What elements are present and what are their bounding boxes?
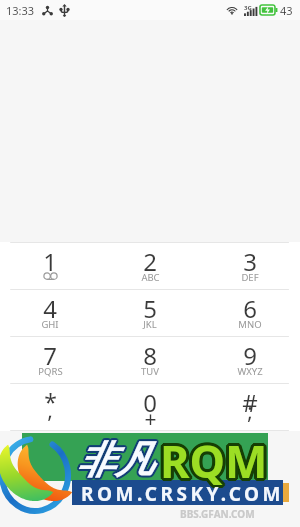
staticText: 非凡 <box>77 434 153 482</box>
staticText: 5 <box>143 292 157 325</box>
button[interactable]: 2 <box>100 243 200 289</box>
button[interactable]: * <box>0 384 100 430</box>
staticText: # <box>242 386 258 419</box>
button[interactable]: 1 <box>0 243 100 289</box>
staticText: 3 <box>243 245 257 278</box>
staticText: RQM <box>162 431 270 492</box>
button[interactable]: 5 <box>100 290 200 336</box>
staticText: 非凡 <box>78 436 154 484</box>
staticText: RQM <box>160 433 268 494</box>
button[interactable]: 0 <box>100 384 200 430</box>
staticText: 1 <box>43 245 57 278</box>
staticText: RQM <box>158 430 266 491</box>
staticText: RQM <box>162 430 270 491</box>
staticText: 非凡 <box>77 435 153 483</box>
staticText: RQM <box>160 428 268 489</box>
staticText: RQM <box>163 429 271 490</box>
staticText: 非凡 <box>75 437 151 485</box>
staticText: RQM <box>163 430 271 491</box>
staticText: RQM <box>159 429 267 490</box>
staticText: 非凡 <box>78 438 154 486</box>
staticText: 非凡 <box>79 437 155 485</box>
staticText: 非凡 <box>78 435 154 483</box>
staticText: 非凡 <box>78 437 154 485</box>
staticText: GHI <box>41 318 59 331</box>
staticText: RQM <box>160 427 268 488</box>
staticText: 非凡 <box>79 436 155 484</box>
staticText: BBS.GFAN.COM <box>180 507 255 521</box>
staticText: RQM <box>159 432 267 493</box>
staticText: RQM <box>161 431 269 492</box>
staticText: 3G <box>244 4 252 12</box>
button[interactable]: 4 <box>0 290 100 336</box>
staticText: 8 <box>143 339 157 372</box>
staticText: , <box>47 396 53 425</box>
staticText: RQM <box>161 427 269 488</box>
staticText: 6 <box>243 292 257 325</box>
staticText: + <box>144 405 157 434</box>
staticText: ROM.CRSKY.COM <box>81 481 284 507</box>
staticText: 非凡 <box>75 435 151 483</box>
button[interactable]: 3 <box>200 243 300 289</box>
staticText: 非凡 <box>76 438 152 486</box>
button[interactable]: 7 <box>0 337 100 383</box>
staticText: DEF <box>241 271 259 284</box>
staticText: TUV <box>141 365 159 378</box>
staticText: RQM <box>158 431 266 492</box>
staticText: RQM <box>162 428 270 489</box>
staticText: ; <box>247 397 253 426</box>
staticText: MNO <box>238 318 262 331</box>
staticText: ABC <box>141 271 160 284</box>
staticText: RQM <box>158 428 266 489</box>
staticText: RQM <box>159 430 267 491</box>
staticText: RQM <box>160 431 268 492</box>
staticText: 0 <box>143 386 157 419</box>
staticText: 非凡 <box>77 437 153 485</box>
staticText: RQM <box>157 429 265 490</box>
staticText: RQM <box>158 432 266 493</box>
staticText: RQM <box>157 430 265 491</box>
staticText: RQM <box>162 432 270 493</box>
button[interactable]: 9 <box>200 337 300 383</box>
staticText: RQM <box>162 429 270 490</box>
staticText: 非凡 <box>79 435 155 483</box>
staticText: RQM <box>163 431 271 492</box>
staticText: RQM <box>160 429 268 490</box>
button[interactable]: 8 <box>100 337 200 383</box>
staticText: 非凡 <box>76 436 152 484</box>
staticText: RQM <box>157 431 265 492</box>
staticText: 2 <box>143 245 157 278</box>
staticText: RQM <box>161 432 269 493</box>
staticText: RQM <box>161 429 269 490</box>
staticText: 非凡 <box>77 436 153 484</box>
staticText: 非凡 <box>78 434 154 482</box>
staticText: PQRS <box>38 365 63 378</box>
staticText: 非凡 <box>76 434 152 482</box>
button[interactable]: # <box>200 384 300 430</box>
staticText: RQM <box>158 429 266 490</box>
staticText: 非凡 <box>75 436 151 484</box>
staticText: 13:33 <box>6 3 35 18</box>
button[interactable]: 6 <box>200 290 300 336</box>
staticText: RQM <box>159 427 267 488</box>
staticText: 非凡 <box>76 435 152 483</box>
staticText: 9 <box>243 339 257 372</box>
staticText: 43 <box>280 3 293 18</box>
staticText: RQM <box>161 430 269 491</box>
staticText: RQM <box>159 428 267 489</box>
staticText: WXYZ <box>237 365 263 378</box>
staticText: RQM <box>161 433 269 494</box>
staticText: 7 <box>43 339 57 372</box>
staticText: 4 <box>43 292 57 325</box>
staticText: RQM <box>159 433 267 494</box>
staticText: 非凡 <box>77 438 153 486</box>
staticText: * <box>44 386 57 417</box>
staticText: RQM <box>160 430 268 491</box>
staticText: RQM <box>159 431 267 492</box>
staticText: RQM <box>161 428 269 489</box>
staticText: JKL <box>143 318 157 331</box>
staticText: RQM <box>160 432 268 493</box>
staticText: 非凡 <box>76 437 152 485</box>
